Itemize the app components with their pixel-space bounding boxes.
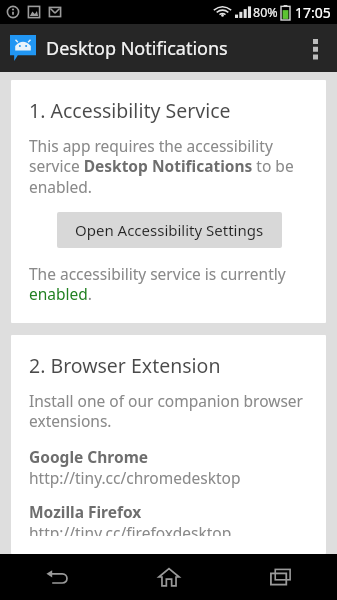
- staticText: 80%: [253, 4, 278, 21]
- staticText: 17:05: [295, 3, 331, 22]
- button[interactable]: Home: [113, 554, 225, 600]
- staticText: 1. Accessibility Service: [29, 97, 231, 124]
- button[interactable]: Recent apps: [225, 554, 337, 600]
- staticText: Google Chrome: [29, 446, 148, 467]
- button[interactable]: More options: [293, 24, 337, 72]
- button[interactable]: Google Chrome: [29, 446, 310, 488]
- button[interactable]: Open Accessibility Settings: [57, 212, 282, 248]
- staticText: http://tiny.cc/firefoxdesktop: [29, 522, 232, 536]
- staticText: Install one of our companion browser ext…: [29, 390, 310, 432]
- button[interactable]: Back: [0, 554, 113, 600]
- staticText: http://tiny.cc/chromedesktop: [29, 467, 241, 488]
- staticText: Open Accessibility Settings: [75, 220, 264, 240]
- staticText: Mozilla Firefox: [29, 501, 142, 522]
- staticText: Desktop Notifications: [46, 36, 228, 61]
- button[interactable]: Mozilla Firefox: [29, 501, 310, 536]
- staticText: 2. Browser Extension: [29, 352, 221, 379]
- staticText: The accessibility service is currently e…: [29, 263, 310, 305]
- staticText: This app requires the accessibility serv…: [29, 135, 310, 198]
